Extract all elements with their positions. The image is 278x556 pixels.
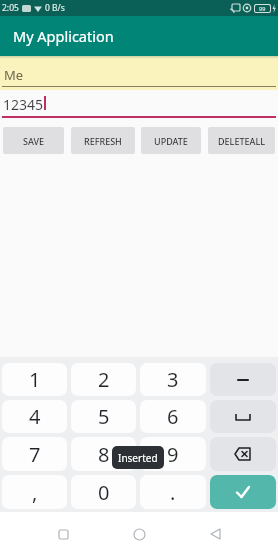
button[interactable]	[210, 437, 276, 471]
button[interactable]: 12345	[0, 90, 278, 118]
button[interactable]: 6	[140, 400, 206, 433]
button[interactable]: UPDATE	[141, 127, 201, 154]
button[interactable]	[184, 512, 246, 556]
button[interactable]: 0	[71, 475, 136, 509]
button[interactable]: 5	[71, 400, 136, 433]
staticText: 3	[167, 366, 179, 393]
button[interactable]: DELETEALL	[208, 127, 275, 154]
button[interactable]	[210, 363, 276, 396]
button[interactable]: 7	[2, 437, 67, 471]
button[interactable]	[32, 512, 94, 556]
staticText: 1	[29, 366, 41, 393]
button[interactable]	[108, 512, 170, 556]
staticText: SAVE	[23, 135, 45, 147]
button[interactable]: .	[140, 475, 206, 509]
staticText: 6	[167, 403, 179, 430]
staticText: 12345	[3, 95, 44, 114]
button[interactable]	[210, 400, 276, 433]
button[interactable]: 1	[2, 363, 67, 396]
staticText: ,	[32, 479, 38, 506]
staticText: 8	[98, 441, 110, 468]
staticText: Inserted	[118, 451, 158, 465]
staticText: 0 B/s	[45, 2, 65, 14]
button[interactable]: SAVE	[3, 127, 64, 154]
staticText: 7	[29, 441, 41, 468]
staticText: Me	[4, 66, 24, 84]
staticText: 4	[29, 403, 41, 430]
staticText: .	[170, 479, 176, 506]
button[interactable]: 8	[71, 437, 136, 471]
staticText: 2	[98, 366, 110, 393]
button[interactable]: 4	[2, 400, 67, 433]
button[interactable]: 9	[140, 437, 206, 471]
staticText: UPDATE	[154, 135, 188, 147]
button[interactable]: REFRESH	[71, 127, 135, 154]
button[interactable]: 3	[140, 363, 206, 396]
staticText: 9	[167, 441, 179, 468]
staticText: DELETEALL	[218, 135, 265, 147]
staticText: My Application	[13, 26, 114, 46]
button[interactable]	[210, 475, 276, 509]
staticText: 99	[259, 5, 266, 12]
staticText: 2:05	[2, 2, 19, 14]
button[interactable]: 2	[71, 363, 136, 396]
staticText: 0	[98, 479, 110, 506]
button[interactable]: ,	[2, 475, 67, 509]
button[interactable]: Me	[0, 56, 278, 90]
staticText: REFRESH	[84, 135, 122, 147]
staticText: 5	[98, 403, 110, 430]
